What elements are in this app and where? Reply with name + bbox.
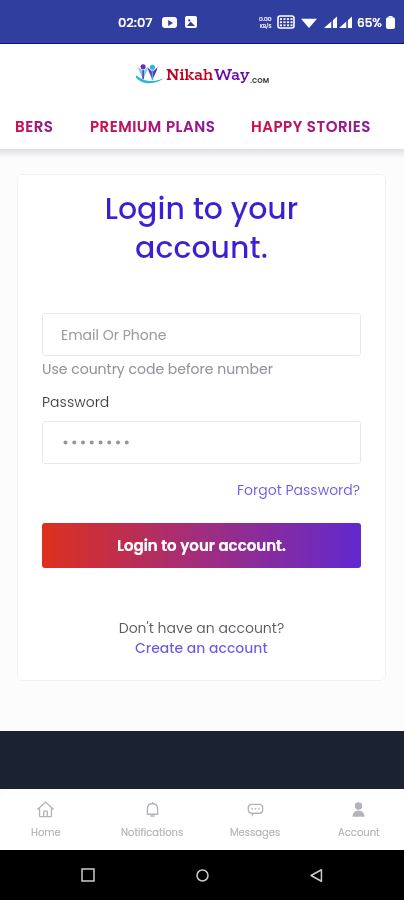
staticText: Password [42, 392, 110, 412]
staticText: Way [214, 64, 250, 86]
staticText: BERS [15, 116, 54, 137]
button[interactable]: Notifications [101, 789, 202, 850]
button[interactable]: Create an account [135, 638, 268, 658]
button[interactable]: BERS [15, 112, 54, 141]
staticText: HAPPY STORIES [251, 116, 371, 137]
button[interactable]: PREMIUM PLANS [90, 112, 216, 141]
button[interactable] [42, 421, 361, 464]
button[interactable]: Messages [202, 789, 303, 850]
staticText: Messages [230, 825, 281, 839]
staticText: 0.00 [259, 15, 272, 23]
staticText: Notifications [121, 825, 184, 839]
staticText: 02:07 [118, 13, 153, 31]
staticText: Nikah [166, 64, 214, 86]
staticText: Forgot Password? [237, 480, 361, 500]
staticText: Don't have an account? [42, 618, 361, 638]
staticText: Home [31, 825, 61, 839]
button[interactable]: HAPPY STORIES [251, 112, 371, 141]
staticText: Email Or Phone [61, 325, 167, 345]
staticText: Use country code before number [42, 359, 273, 379]
staticText: .COM [250, 76, 270, 86]
staticText: Login to your account. [117, 535, 286, 556]
staticText: Account [338, 825, 380, 839]
button[interactable]: Email Or Phone [42, 313, 361, 356]
button[interactable]: Back [302, 861, 330, 889]
staticText: 65% [357, 14, 382, 31]
button[interactable]: Login to your account. [42, 523, 361, 568]
button[interactable]: Recents [74, 861, 102, 889]
staticText: KB/S [260, 23, 272, 30]
staticText: PREMIUM PLANS [90, 116, 216, 137]
staticText: Login to your account. [64, 188, 339, 268]
staticText: Create an account [135, 638, 268, 658]
button[interactable]: Forgot Password? [237, 480, 361, 500]
button[interactable]: Home [188, 861, 216, 889]
button[interactable]: Account [303, 789, 404, 850]
button[interactable]: Home [0, 789, 101, 850]
